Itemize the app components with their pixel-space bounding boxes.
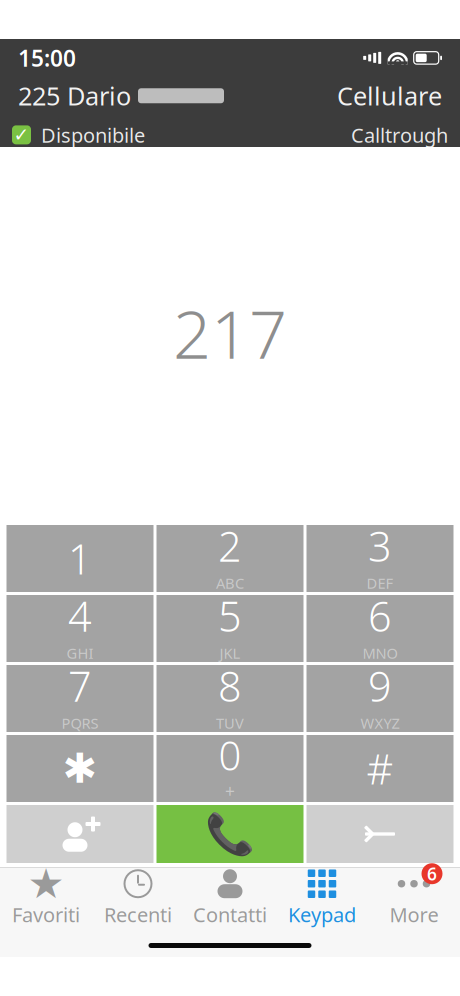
staticText: 4	[68, 588, 92, 643]
button[interactable]: 4	[6, 595, 153, 662]
staticText: JKL	[219, 643, 240, 663]
staticText: 15:00	[18, 43, 76, 73]
staticText: 6	[368, 588, 392, 643]
button[interactable]: 1	[6, 525, 153, 592]
staticText: ✓	[13, 124, 29, 145]
button[interactable]: ✱	[6, 735, 153, 802]
staticText: 9	[368, 658, 392, 713]
button[interactable]: Recenti	[92, 869, 184, 927]
button[interactable]: Keypad	[276, 869, 368, 927]
staticText: 3	[368, 518, 392, 573]
staticText: 5	[218, 588, 242, 643]
staticText: More	[389, 901, 438, 928]
staticText: +	[225, 780, 235, 803]
button[interactable]: 6	[368, 869, 460, 927]
button[interactable]: Contatti	[184, 869, 276, 927]
staticText: TUV	[216, 713, 244, 733]
staticText: DEF	[366, 573, 393, 593]
staticText: WXYZ	[360, 713, 399, 733]
staticText: PQRS	[61, 713, 98, 733]
button[interactable]: 2	[156, 525, 303, 592]
staticText: ABC	[216, 573, 244, 593]
staticText: 8	[218, 658, 242, 713]
staticText: 7	[68, 658, 92, 713]
staticText: Recenti	[104, 901, 172, 928]
staticText: Cellulare	[337, 79, 442, 113]
button[interactable]: ★	[0, 869, 92, 927]
staticText: 225 Dario	[18, 79, 138, 113]
staticText: ✱	[62, 745, 97, 792]
staticText: 0	[218, 728, 241, 781]
staticText: MNO	[362, 643, 397, 663]
button[interactable]: #	[306, 735, 453, 802]
button[interactable]: 7	[6, 665, 153, 732]
button[interactable]: Delete	[306, 805, 453, 863]
staticText: Contatti	[193, 901, 267, 928]
button[interactable]: 0	[156, 735, 303, 802]
staticText: ★	[27, 860, 64, 907]
button[interactable]: Add contact	[6, 805, 153, 863]
staticText: 1	[68, 531, 92, 586]
button[interactable]: 8	[156, 665, 303, 732]
staticText: Disponibile	[31, 122, 145, 148]
button[interactable]: Call	[156, 805, 303, 863]
staticText: 2	[218, 518, 242, 573]
button[interactable]: 6	[306, 595, 453, 662]
staticText: 6	[427, 862, 437, 885]
staticText: 217	[173, 289, 287, 377]
staticText: GHI	[66, 643, 93, 663]
staticText: Calltrough	[351, 122, 448, 148]
button[interactable]: 9	[306, 665, 453, 732]
staticText: 📞	[205, 811, 255, 857]
button[interactable]: 3	[306, 525, 453, 592]
staticText: #	[366, 741, 393, 796]
staticText: Keypad	[288, 901, 356, 928]
staticText: Favoriti	[12, 901, 80, 928]
button[interactable]: 5	[156, 595, 303, 662]
